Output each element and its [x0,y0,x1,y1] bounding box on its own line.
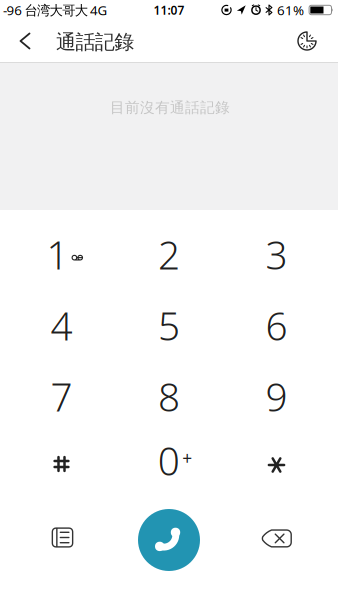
button[interactable]: 6 [226,293,326,357]
button[interactable]: 7 [11,364,111,428]
button[interactable]: 撥號 [136,507,202,573]
button[interactable]: 9 [226,364,326,428]
staticText: 11:07 [153,2,184,18]
button[interactable]: 0 [119,428,219,492]
staticText: 5 [158,300,180,351]
staticText: 1 [46,229,68,280]
button[interactable]: 2 [119,222,219,286]
staticText: 9 [265,371,287,422]
staticText: 4 [50,300,72,351]
staticText: 6 [265,300,287,351]
button[interactable]: 5 [119,293,219,357]
button[interactable]: 8 [119,364,219,428]
button[interactable] [11,428,111,492]
staticText: 目前沒有通話記錄 [110,98,230,116]
staticText: 0 [158,435,180,486]
button[interactable] [226,428,326,492]
button[interactable]: 3 [226,222,326,286]
staticText: -96 台湾大哥大 4G [3,1,108,19]
staticText: 61% [277,1,304,19]
button[interactable]: 通話設定 [285,20,329,62]
button[interactable]: 聯絡人 [26,505,98,569]
staticText: 8 [158,371,180,422]
staticText: + [182,446,192,469]
button[interactable]: Back [5,20,45,62]
button[interactable]: 4 [11,293,111,357]
button[interactable]: 刪除 [241,506,313,570]
staticText: 3 [265,229,287,280]
staticText: 2 [158,229,180,280]
staticText: 7 [50,371,72,422]
staticText: 通話記錄 [56,30,134,54]
button[interactable]: 1 [11,222,111,286]
